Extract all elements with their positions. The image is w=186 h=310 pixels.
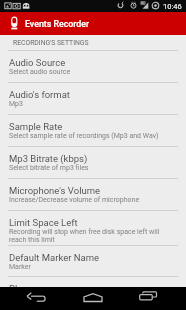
button[interactable]: Audio Source bbox=[0, 51, 186, 83]
staticText: Place bbox=[9, 294, 27, 302]
staticText: Marker bbox=[9, 263, 31, 271]
staticText: RECORDING'S SETTINGS bbox=[13, 39, 89, 47]
button[interactable]: Microphone's Volume bbox=[0, 179, 186, 211]
staticText: Sample Rate bbox=[9, 121, 63, 132]
staticText: Events Recorder bbox=[25, 19, 90, 29]
staticText: Select bitrate of mp3 files bbox=[9, 164, 89, 172]
staticText: Default Marker Name bbox=[9, 252, 100, 263]
button[interactable]: Place bbox=[0, 277, 186, 309]
staticText: Audio's format bbox=[9, 89, 70, 100]
button[interactable]: Sample Rate bbox=[0, 115, 186, 147]
button[interactable]: Default Marker Name bbox=[0, 246, 186, 277]
staticText: Place bbox=[9, 283, 33, 294]
button[interactable]: Audio's format bbox=[0, 83, 186, 115]
staticText: Recording will stop when free disk space… bbox=[9, 228, 160, 236]
staticText: Select audio source bbox=[9, 68, 71, 76]
staticText: Mp3 Bitrate (kbps) bbox=[9, 153, 88, 164]
staticText: reach this limit bbox=[9, 236, 55, 244]
staticText: Microphone's Volume bbox=[9, 185, 101, 196]
staticText: Mp3 bbox=[9, 100, 23, 108]
staticText: 10:46 bbox=[163, 2, 182, 11]
button[interactable]: Limit Space Left bbox=[0, 211, 186, 246]
staticText: Limit Space Left bbox=[9, 217, 78, 228]
staticText: Audio Source bbox=[9, 57, 66, 68]
staticText: Select sample rate of recordings (Mp3 an… bbox=[9, 132, 159, 140]
button[interactable]: Mp3 Bitrate (kbps) bbox=[0, 147, 186, 179]
button[interactable]: Home bbox=[79, 287, 107, 310]
button[interactable]: Back bbox=[24, 287, 53, 310]
staticText: Increase/Decrease volume of microphone bbox=[9, 196, 140, 204]
button[interactable]: Recents bbox=[134, 287, 162, 310]
